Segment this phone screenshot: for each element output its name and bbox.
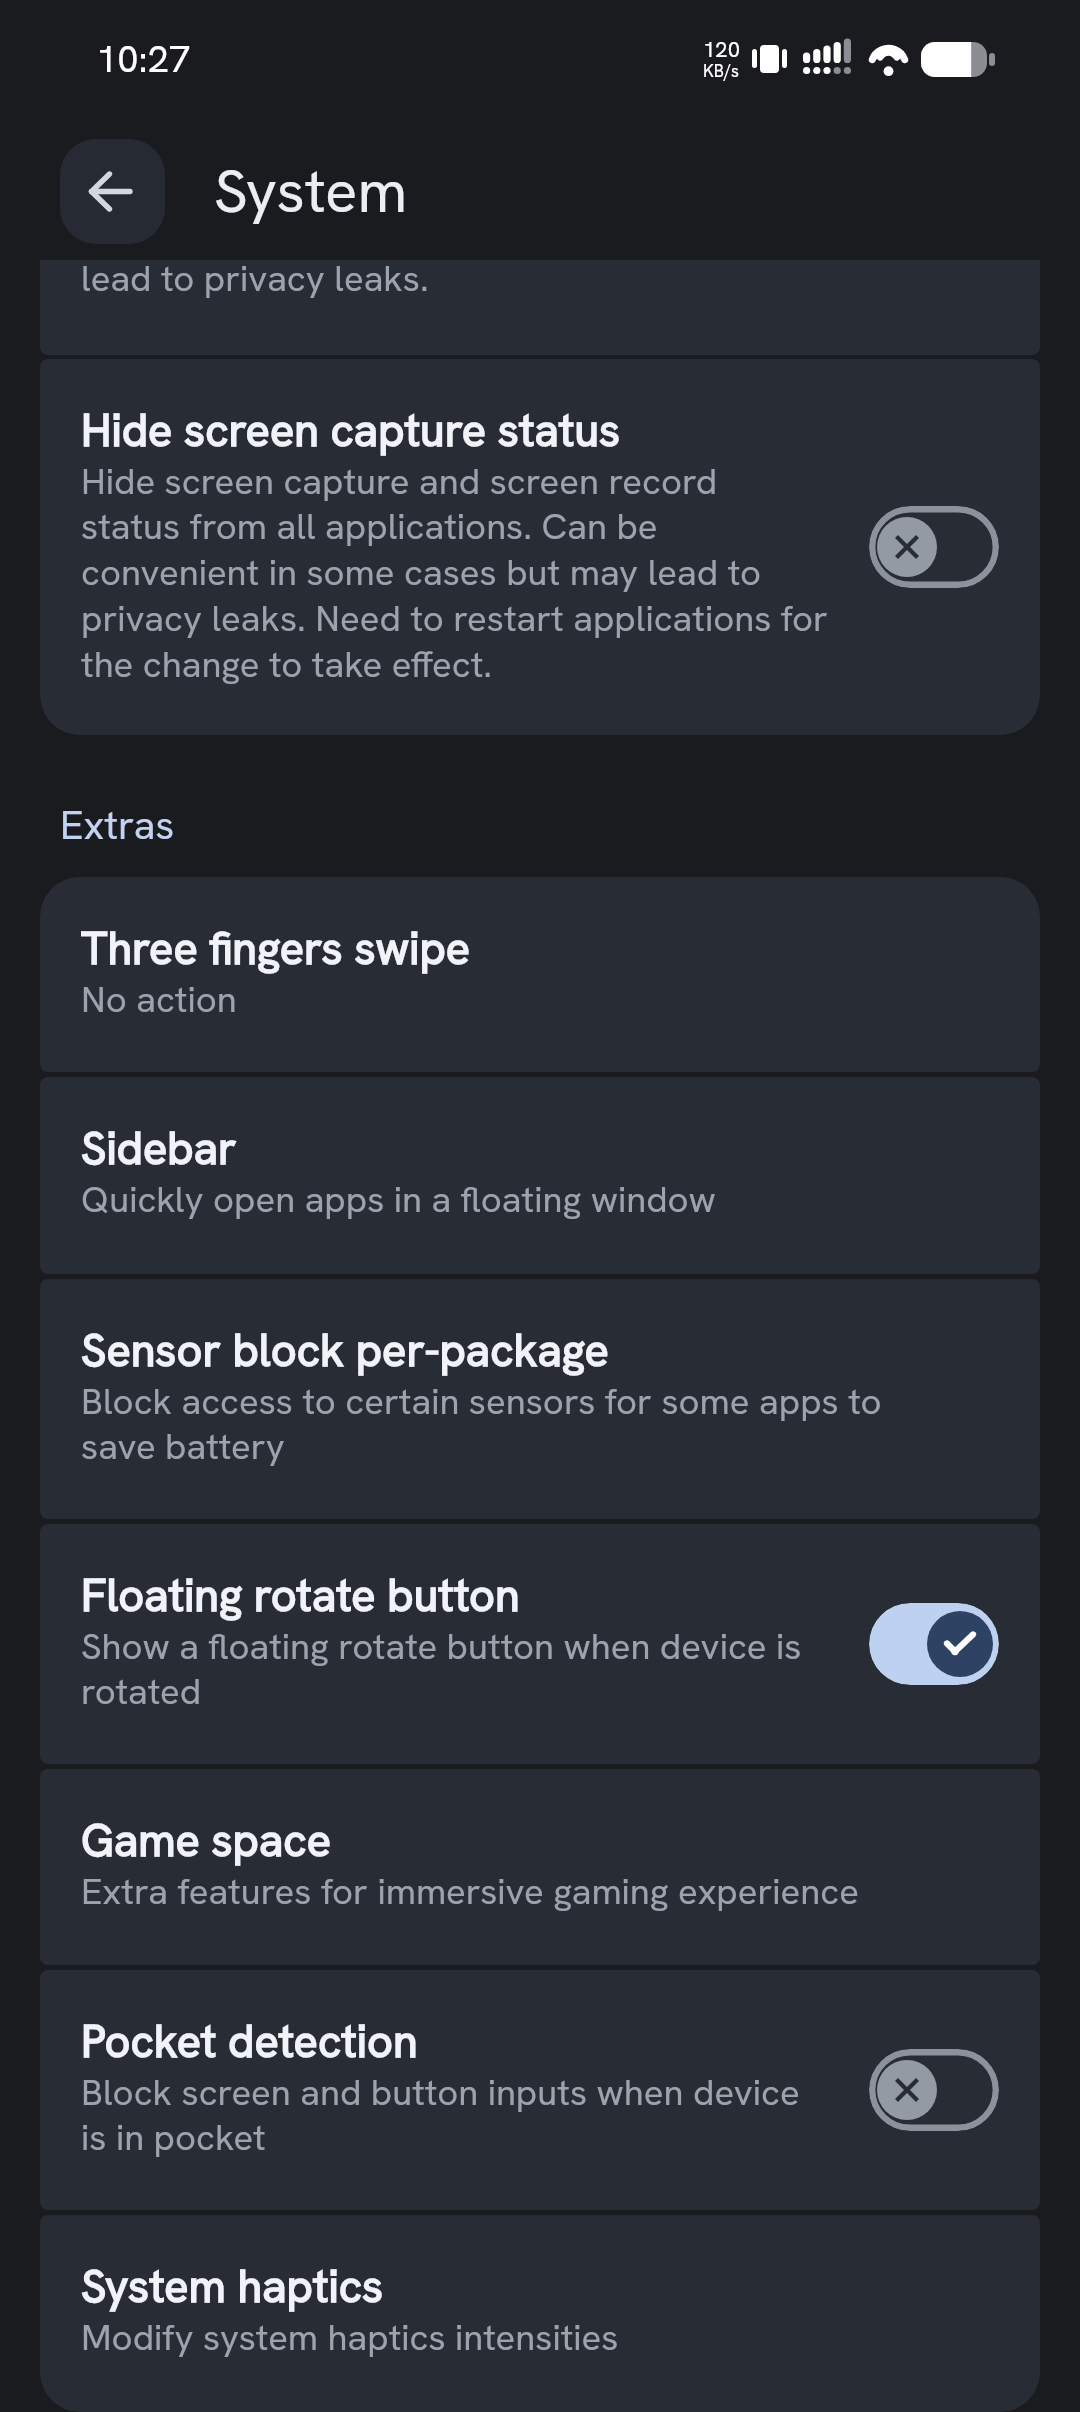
staticText: Sensor block per-package [81, 1321, 609, 1377]
button[interactable]: Hide screen capture status [40, 359, 1040, 735]
staticText: Extras [60, 799, 175, 851]
staticText: System [214, 152, 408, 230]
staticText: 10:27 [96, 34, 191, 84]
staticText: Block screen and button inputs when devi… [81, 2068, 800, 2160]
staticText: Extra features for immersive gaming expe… [81, 1867, 859, 1913]
button[interactable]: Floating rotate button [40, 1524, 1040, 1764]
staticText: Sidebar [81, 1119, 237, 1175]
button[interactable]: Game space [40, 1769, 1040, 1965]
button[interactable]: Three fingers swipe [40, 877, 1040, 1072]
staticText: Modify system haptics intensities [81, 2313, 619, 2359]
staticText: lead to privacy leaks. [81, 260, 429, 302]
staticText: 120 [703, 35, 740, 64]
button[interactable]: Back [60, 139, 165, 244]
button[interactable]: Switch off [869, 506, 999, 588]
staticText: Quickly open apps in a floating window [81, 1175, 716, 1221]
button[interactable]: Switch on [869, 1603, 999, 1685]
staticText: System haptics [81, 2257, 384, 2313]
staticText: Pocket detection [81, 2012, 418, 2068]
button[interactable]: Sidebar [40, 1077, 1040, 1274]
button[interactable]: Sensor block per-package [40, 1279, 1040, 1519]
staticText: Show a floating rotate button when devic… [81, 1622, 802, 1714]
staticText: Three fingers swipe [81, 919, 471, 975]
button[interactable]: Switch off [869, 2049, 999, 2131]
button[interactable]: System haptics [40, 2215, 1040, 2412]
staticText: Game space [81, 1811, 331, 1867]
staticText: No action [81, 975, 237, 1021]
staticText: Block access to certain sensors for some… [81, 1377, 882, 1469]
staticText: Hide screen capture and screen record st… [81, 457, 828, 687]
staticText: Floating rotate button [81, 1566, 520, 1622]
staticText: KB/s [703, 60, 740, 82]
button[interactable]: lead to privacy leaks. [40, 260, 1040, 355]
button[interactable]: Pocket detection [40, 1970, 1040, 2210]
staticText: Hide screen capture status [81, 401, 621, 457]
